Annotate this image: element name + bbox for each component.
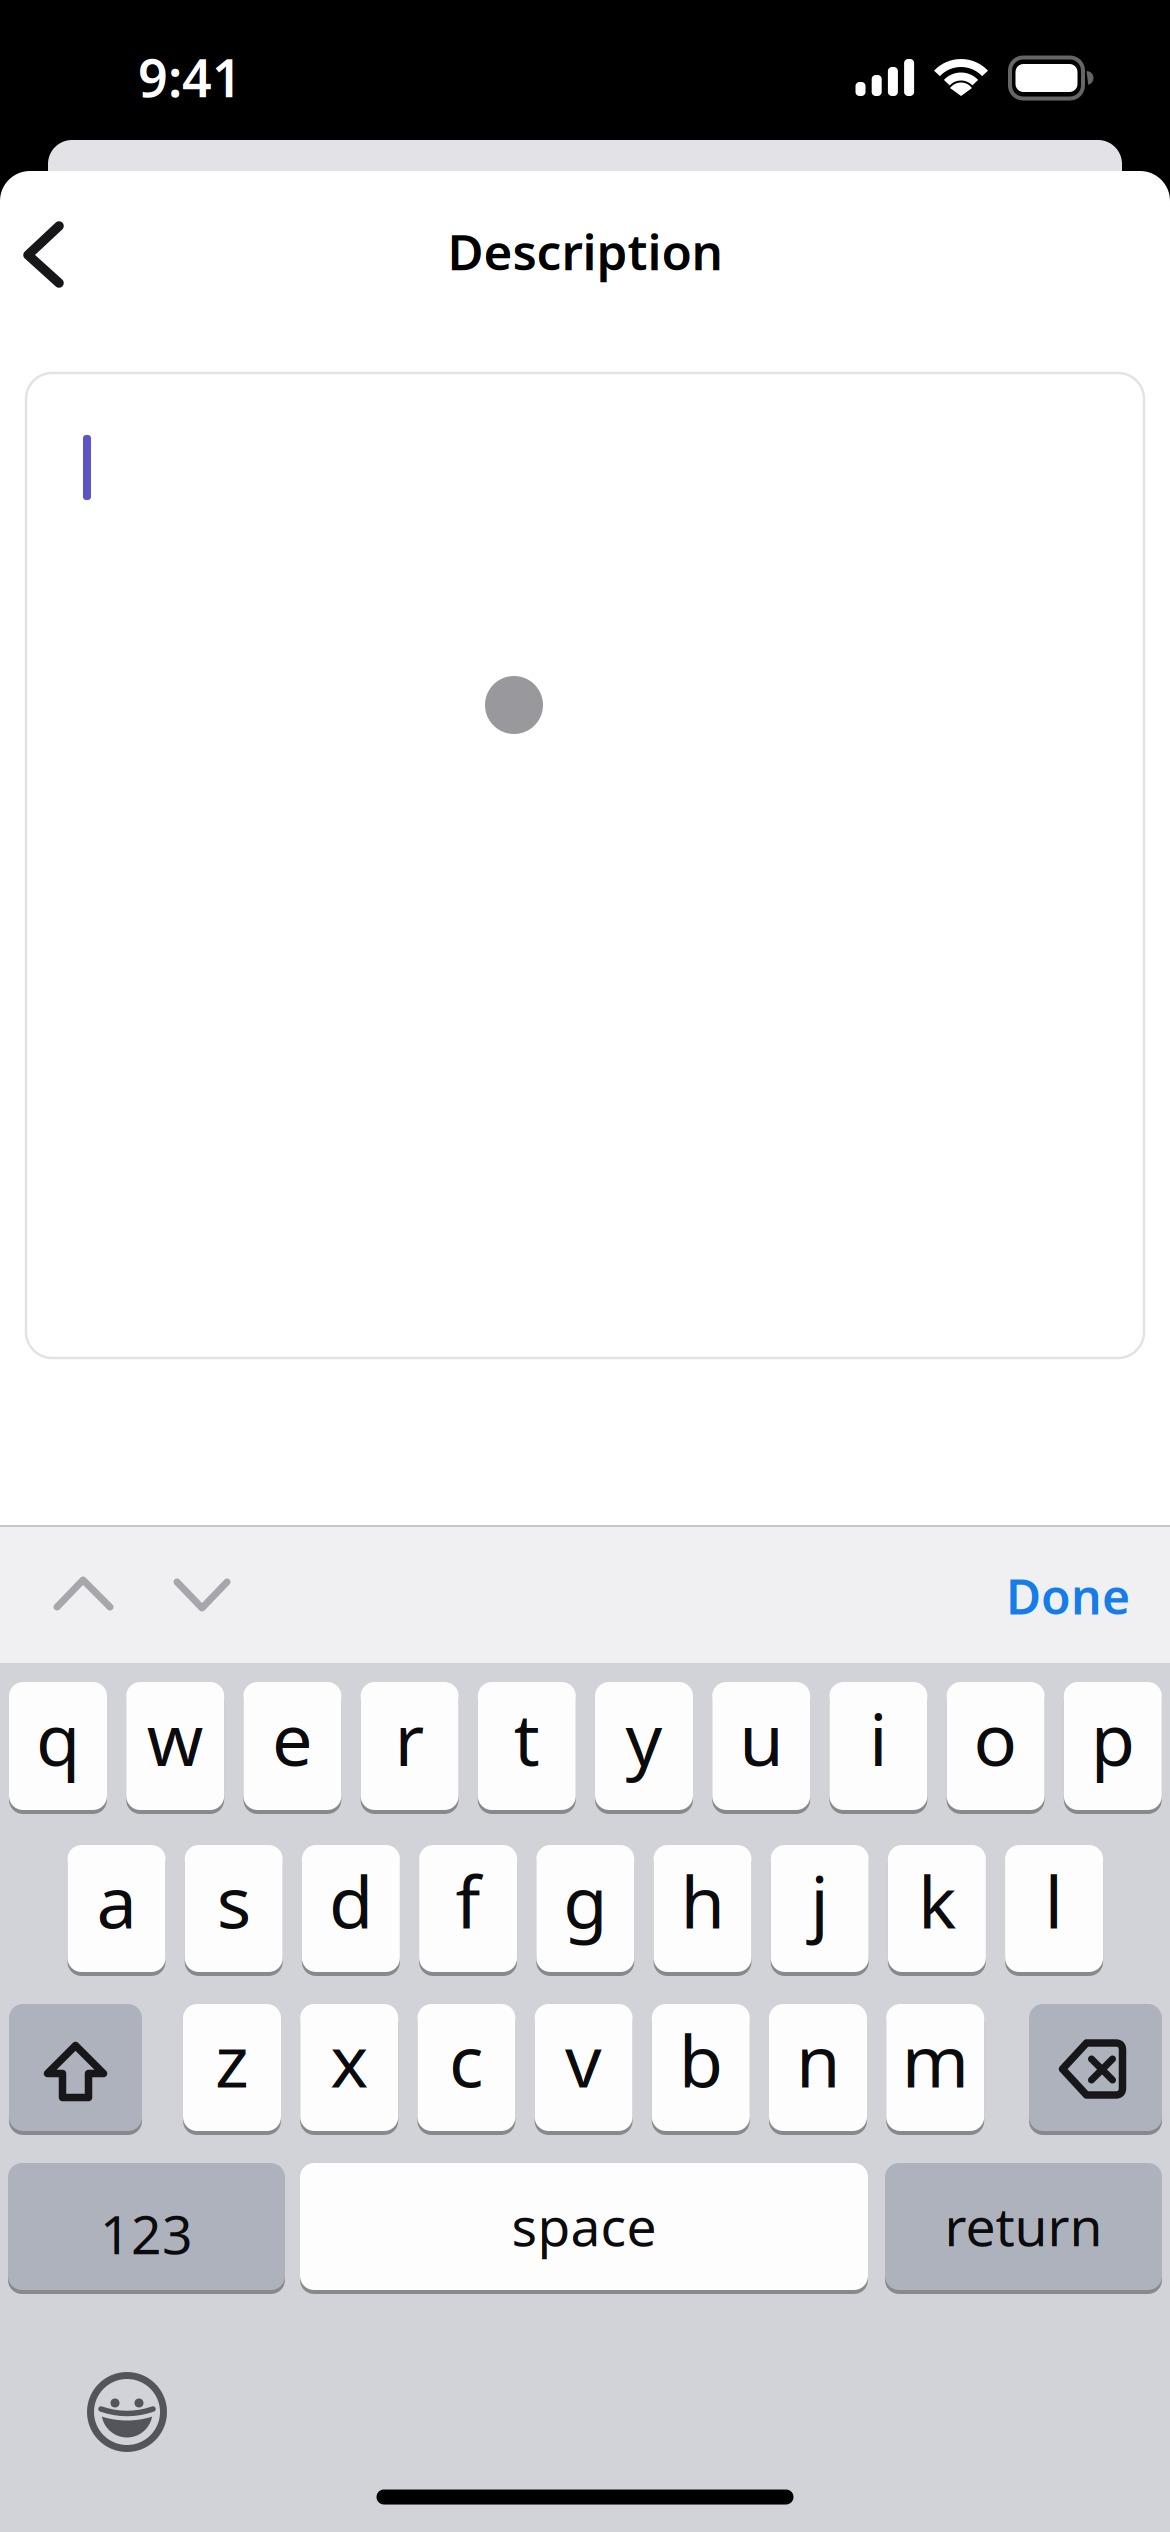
staticText: u	[739, 1690, 783, 1786]
button[interactable]: v	[535, 2003, 633, 2134]
staticText: c	[449, 2012, 484, 2107]
button[interactable]: s	[185, 1844, 283, 1975]
staticText: n	[796, 2012, 840, 2107]
button[interactable]: k	[888, 1844, 986, 1975]
button[interactable]: y	[595, 1681, 693, 1813]
staticText: q	[36, 1690, 80, 1786]
button[interactable]: n	[769, 2003, 867, 2134]
button[interactable]: h	[653, 1844, 751, 1975]
staticText: e	[272, 1690, 313, 1786]
staticText: space	[511, 2190, 656, 2261]
button[interactable]	[1029, 2003, 1162, 2134]
button[interactable]	[170, 1575, 234, 1615]
staticText: b	[679, 2012, 723, 2107]
button[interactable]: m	[886, 2003, 984, 2134]
button[interactable]: l	[1005, 1844, 1103, 1975]
button[interactable]	[50, 1573, 117, 1614]
button[interactable]: a	[67, 1844, 165, 1975]
staticText: y	[625, 1690, 662, 1786]
staticText: o	[974, 1690, 1018, 1786]
staticText: r	[395, 1690, 425, 1786]
staticText: l	[1045, 1853, 1064, 1948]
button[interactable]: q	[9, 1681, 107, 1813]
staticText: p	[1091, 1690, 1135, 1786]
staticText: i	[869, 1690, 888, 1786]
button[interactable]: x	[300, 2003, 398, 2134]
staticText: Description	[447, 218, 722, 284]
button[interactable]	[9, 2003, 142, 2134]
button[interactable]: i	[829, 1681, 927, 1813]
staticText: d	[329, 1853, 373, 1948]
button[interactable]: r	[361, 1681, 459, 1813]
staticText: t	[514, 1690, 540, 1786]
staticText: j	[810, 1853, 829, 1948]
staticText: f	[456, 1853, 481, 1948]
staticText: g	[563, 1853, 607, 1948]
button[interactable]	[11, 214, 75, 294]
button[interactable]: return	[885, 2162, 1162, 2293]
button[interactable]: b	[652, 2003, 750, 2134]
button[interactable]: p	[1064, 1681, 1162, 1813]
staticText: 123	[100, 2198, 193, 2269]
staticText: a	[96, 1853, 136, 1948]
staticText: m	[902, 2012, 969, 2107]
button[interactable]	[26, 373, 1144, 1358]
button[interactable]: o	[947, 1681, 1045, 1813]
button[interactable]: f	[419, 1844, 517, 1975]
button[interactable]: t	[478, 1681, 576, 1813]
staticText: v	[565, 2012, 602, 2107]
button[interactable]: z	[183, 2003, 281, 2134]
staticText: return	[944, 2190, 1102, 2261]
staticText: h	[680, 1853, 724, 1948]
staticText: 9:41	[138, 42, 242, 112]
button[interactable]: j	[771, 1844, 869, 1975]
button[interactable]: space	[300, 2162, 868, 2293]
staticText: k	[918, 1853, 956, 1948]
staticText: x	[330, 2012, 368, 2107]
button[interactable]	[87, 2372, 167, 2452]
button[interactable]: w	[126, 1681, 224, 1813]
button[interactable]: c	[417, 2003, 515, 2134]
staticText: w	[147, 1690, 204, 1786]
button[interactable]: d	[302, 1844, 400, 1975]
staticText: Done	[1006, 1564, 1130, 1628]
staticText: s	[217, 1853, 251, 1948]
button[interactable]: u	[712, 1681, 810, 1813]
button[interactable]: e	[243, 1681, 341, 1813]
button[interactable]: g	[536, 1844, 634, 1975]
button[interactable]: Done	[1006, 1564, 1130, 1628]
button[interactable]: 123	[8, 2162, 285, 2293]
staticText: z	[215, 2012, 249, 2107]
